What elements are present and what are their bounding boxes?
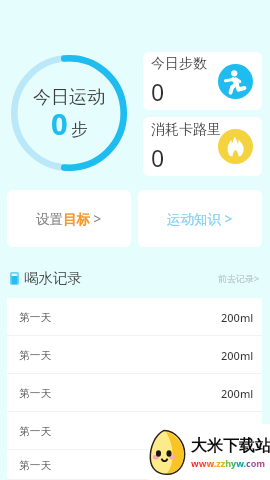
button[interactable]: 今日步数 bbox=[143, 52, 262, 110]
staticText: 200ml bbox=[221, 458, 254, 473]
staticText: 第一天 bbox=[19, 349, 52, 362]
staticText: 设置目标 > bbox=[36, 210, 102, 228]
button[interactable]: 第一天 bbox=[7, 374, 262, 412]
staticText: 今日步数 bbox=[151, 55, 207, 73]
button[interactable]: 前去记录> bbox=[218, 272, 260, 284]
button[interactable]: 设置目标 > bbox=[7, 190, 131, 247]
staticText: 0 bbox=[51, 104, 68, 143]
staticText: 今日运动 bbox=[33, 86, 105, 109]
staticText: 200ml bbox=[221, 348, 254, 363]
staticText: 200ml bbox=[221, 310, 254, 325]
staticText: 第一天 bbox=[19, 311, 52, 324]
button[interactable]: 运动知识 > bbox=[138, 190, 262, 247]
staticText: 第一天 bbox=[19, 459, 52, 472]
button[interactable]: 消耗卡路里 bbox=[143, 117, 262, 176]
staticText: 喝水记录 bbox=[24, 269, 82, 287]
staticText: 200ml bbox=[221, 424, 254, 439]
button[interactable]: 第一天 bbox=[7, 450, 262, 480]
staticText: 步 bbox=[71, 119, 88, 140]
button[interactable]: 第一天 bbox=[7, 412, 262, 450]
staticText: 运动知识 > bbox=[167, 210, 233, 228]
staticText: 大米下载站 bbox=[191, 436, 270, 456]
staticText: 第一天 bbox=[19, 425, 52, 438]
button[interactable]: 第一天 bbox=[7, 336, 262, 374]
staticText: www.zzhyw.com bbox=[191, 457, 266, 469]
button[interactable]: 第一天 bbox=[7, 298, 262, 336]
staticText: 第一天 bbox=[19, 387, 52, 400]
staticText: 0 bbox=[151, 76, 165, 107]
staticText: 200ml bbox=[221, 386, 254, 401]
staticText: 0 bbox=[151, 142, 165, 173]
staticText: 消耗卡路里 bbox=[151, 121, 221, 139]
